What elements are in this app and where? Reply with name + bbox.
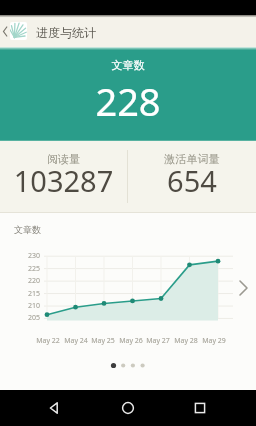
staticText: 205: [25, 313, 40, 323]
button[interactable]: [190, 398, 210, 418]
staticText: 103287: [0, 161, 127, 200]
staticText: May 25: [89, 336, 117, 346]
staticText: May 26: [117, 336, 145, 346]
button[interactable]: 激活单词量: [128, 141, 256, 212]
button[interactable]: [0, 0, 256, 426]
staticText: May 22: [34, 336, 62, 346]
button[interactable]: [118, 398, 138, 418]
button[interactable]: [44, 398, 64, 418]
button[interactable]: 阅读量: [0, 141, 127, 212]
staticText: 654: [128, 161, 256, 200]
staticText: 文章数: [0, 58, 256, 72]
staticText: May 28: [172, 336, 200, 346]
staticText: 215: [25, 289, 40, 299]
staticText: 225: [25, 264, 40, 274]
staticText: 230: [25, 251, 40, 261]
staticText: 220: [25, 276, 40, 286]
staticText: 阅读量: [0, 152, 127, 166]
staticText: 文章数: [14, 224, 41, 235]
staticText: May 27: [144, 336, 172, 346]
staticText: 210: [25, 301, 40, 311]
staticText: 进度与统计: [36, 25, 96, 40]
staticText: 激活单词量: [128, 152, 256, 166]
staticText: 228: [0, 75, 256, 127]
button[interactable]: 进度与统计: [0, 15, 256, 47]
staticText: May 24: [62, 336, 90, 346]
staticText: May 29: [200, 336, 228, 346]
